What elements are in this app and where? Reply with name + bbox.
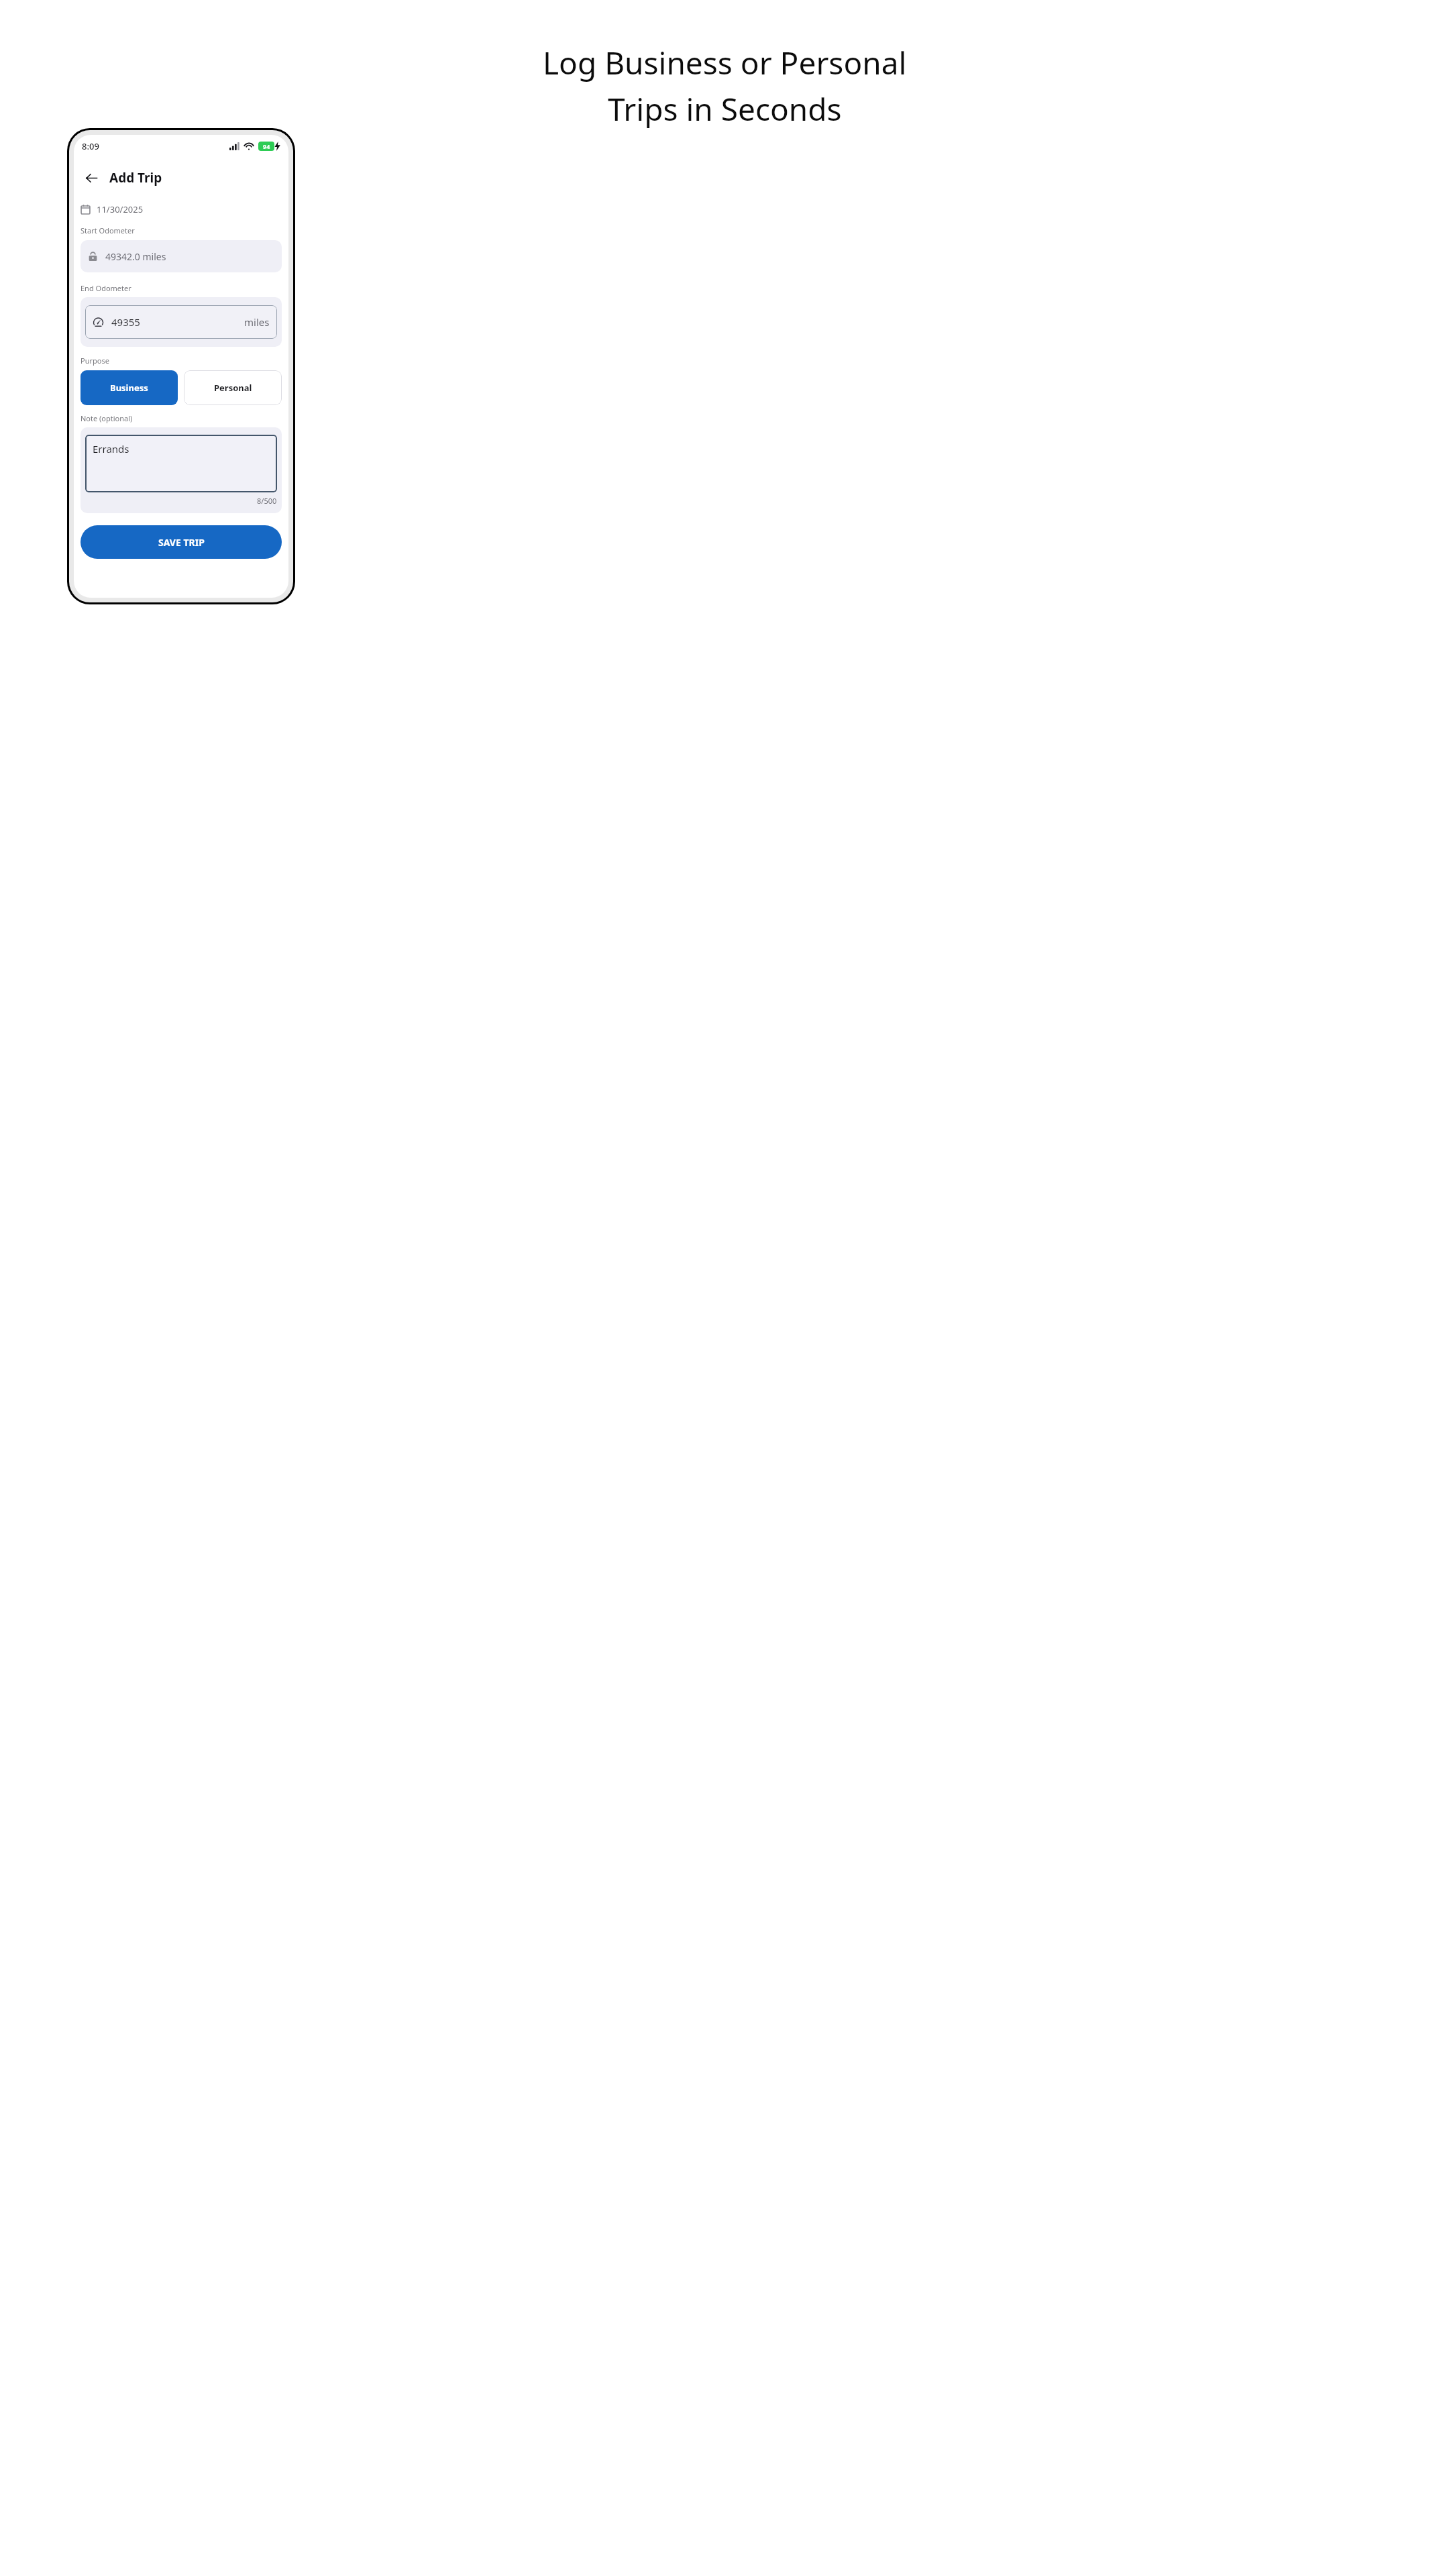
staticText: Errands — [93, 442, 129, 455]
staticText: Purpose — [80, 356, 109, 366]
button[interactable]: SAVE TRIP — [80, 525, 282, 559]
button[interactable]: 11/30/2025 — [80, 202, 144, 217]
staticText: Business — [110, 382, 148, 394]
button[interactable]: Business — [80, 370, 178, 405]
staticText: 49355 — [111, 315, 140, 329]
button[interactable]: Errands — [85, 435, 277, 492]
button[interactable]: Back — [80, 167, 102, 189]
staticText: Trips in Seconds — [608, 88, 842, 130]
staticText: Log Business or Personal — [543, 42, 907, 84]
staticText: End Odometer — [80, 283, 131, 293]
staticText: SAVE TRIP — [158, 536, 205, 549]
staticText: Add Trip — [109, 169, 162, 186]
staticText: 11/30/2025 — [97, 203, 144, 215]
staticText: Start Odometer — [80, 225, 135, 235]
staticText: 8/500 — [257, 496, 277, 506]
button[interactable]: Personal — [184, 370, 282, 405]
staticText: miles — [244, 315, 270, 329]
staticText: 49342.0 miles — [105, 250, 166, 263]
button[interactable]: 49342.0 miles — [80, 240, 282, 272]
staticText: 94 — [263, 142, 270, 150]
staticText: Personal — [214, 382, 252, 394]
staticText: Note (optional) — [80, 413, 133, 423]
button[interactable]: 49355 — [85, 305, 277, 339]
staticText: 8:09 — [82, 140, 99, 152]
